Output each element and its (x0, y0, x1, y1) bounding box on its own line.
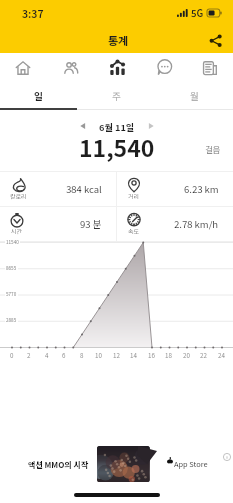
button[interactable]: Home (1, 53, 45, 82)
staticText: 3:37 (22, 6, 44, 21)
staticText: 6월 11일 (99, 120, 135, 133)
staticText: App Store (174, 458, 208, 469)
staticText: 주 (112, 89, 121, 103)
staticText: 12 (113, 351, 120, 360)
staticText: 칼로리 (10, 192, 27, 201)
button[interactable]: Share (203, 28, 227, 52)
staticText: 93 분 (80, 217, 102, 231)
button[interactable]: 액션 MMO의 시작 (0, 437, 233, 493)
staticText: 월 (190, 89, 199, 103)
button[interactable]: 일 (0, 82, 77, 110)
button[interactable]: Chat (142, 53, 186, 82)
button[interactable]: Next day (144, 119, 158, 133)
staticText: 16 (148, 351, 155, 360)
staticText: 0 (10, 351, 14, 360)
staticText: 5770 (6, 291, 17, 298)
staticText: 11,540 (79, 130, 155, 163)
staticText: 18 (165, 351, 172, 360)
staticText: 2 (27, 351, 31, 360)
staticText: 통계 (108, 32, 129, 48)
staticText: 6 (62, 351, 66, 360)
button[interactable]: 칼로리 (0, 172, 116, 206)
staticText: 6.23 km (184, 182, 219, 196)
staticText: 8655 (6, 265, 17, 272)
staticText: 10 (95, 351, 102, 360)
staticText: 8 (80, 351, 84, 360)
staticText: 거리 (128, 192, 140, 201)
staticText: 11540 (6, 239, 19, 246)
staticText: 14 (130, 351, 137, 360)
staticText: 속도 (128, 227, 140, 236)
button[interactable]: 속도 (117, 207, 233, 241)
button[interactable]: Ad info (221, 451, 232, 462)
staticText: 시간 (11, 227, 23, 236)
button[interactable]: Friends (49, 53, 93, 82)
staticText: 384 kcal (66, 182, 102, 196)
button[interactable]: 주 (77, 82, 155, 110)
staticText: 24 (218, 351, 225, 360)
button[interactable]: News (188, 53, 232, 82)
button[interactable]: 월 (155, 82, 233, 110)
staticText: 2.78 km/h (174, 217, 219, 231)
button[interactable]: Previous day (76, 119, 90, 133)
staticText: 22 (200, 351, 207, 360)
staticText: 일 (34, 89, 43, 103)
button[interactable]: 시간 (0, 207, 116, 241)
staticText: 5G (191, 6, 204, 20)
staticText: 4 (45, 351, 49, 360)
button[interactable]: 거리 (117, 172, 233, 206)
button[interactable]: Statistics (95, 53, 139, 82)
staticText: 2885 (6, 317, 17, 324)
staticText: 걸음 (205, 143, 221, 155)
staticText: 액션 MMO의 시작 (28, 459, 89, 471)
staticText: 20 (183, 351, 190, 360)
